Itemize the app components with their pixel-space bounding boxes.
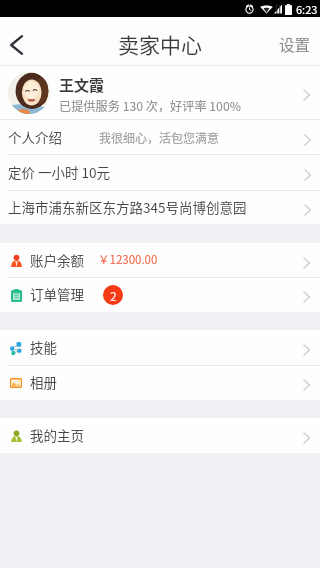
button[interactable]: 账户余额 [0,243,320,278]
button[interactable]: 相册 [0,366,320,400]
staticText: ￥12300.00 [98,251,158,268]
button[interactable]: 王文霞 [0,66,320,120]
staticText: 相册 [30,372,57,392]
staticText: 上海市浦东新区东方路345号尚博创意园 [8,197,247,217]
staticText: 个人介绍 [8,127,62,147]
button[interactable]: 定价 一小时 10元 [0,155,320,191]
button[interactable]: 技能 [0,330,320,366]
staticText: 2 [110,287,117,304]
staticText: 我的主页 [30,425,84,445]
staticText: 王文霞 [59,74,105,96]
button[interactable]: 个人介绍 [0,120,320,155]
staticText: 订单管理 [30,284,84,304]
button[interactable]: 上海市浦东新区东方路345号尚博创意园 [0,191,320,224]
staticText: 已提供服务 130 次，好评率 100% [59,97,241,115]
button[interactable]: Back [0,17,42,66]
staticText: 6:23 [296,1,318,17]
button[interactable]: 设置 [267,23,320,61]
staticText: 技能 [30,337,57,357]
staticText: 设置 [279,33,311,55]
staticText: 我很细心，活包您满意 [99,129,220,146]
staticText: 定价 一小时 10元 [8,162,111,182]
staticText: 卖家中心 [118,29,202,59]
button[interactable]: 订单管理 [0,278,320,312]
staticText: 账户余额 [30,250,84,270]
button[interactable]: 我的主页 [0,418,320,453]
